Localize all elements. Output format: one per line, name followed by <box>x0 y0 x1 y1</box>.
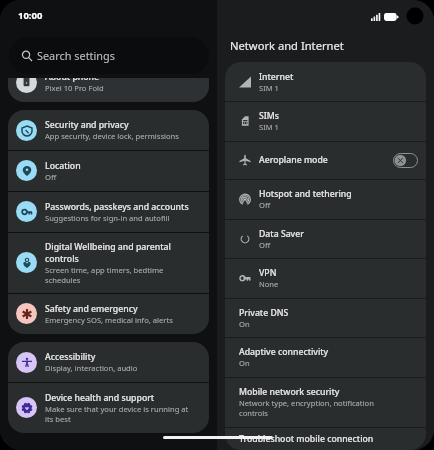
staticText: App security, device lock, permissions <box>45 131 179 141</box>
button[interactable]: Data Saver <box>225 219 426 258</box>
staticText: Emergency SOS, medical info, alerts <box>45 315 173 325</box>
button[interactable]: Security and privacy <box>8 110 209 150</box>
staticText: Security and privacy <box>45 119 129 131</box>
staticText: Location <box>45 160 81 172</box>
staticText: On <box>239 358 250 368</box>
button[interactable]: Mobile network security <box>225 377 426 427</box>
staticText: On <box>239 319 250 329</box>
staticText: Aeroplane mode <box>259 154 328 166</box>
staticText: Passwords, passkeys and accounts <box>45 201 189 213</box>
button[interactable]: Hotspot and tethering <box>225 179 426 219</box>
staticText: Hotspot and tethering <box>259 188 352 200</box>
staticText: Safety and emergency <box>45 303 138 315</box>
button[interactable]: VPN <box>225 258 426 298</box>
staticText: Digital Wellbeing and parental controls <box>45 241 198 265</box>
button[interactable]: SIMs <box>225 101 426 141</box>
button[interactable]: Digital Wellbeing and parental controls <box>8 232 209 293</box>
button[interactable]: Passwords, passkeys and accounts <box>8 191 209 232</box>
staticText: Adaptive connectivity <box>239 346 329 358</box>
button[interactable]: Aeroplane mode <box>225 141 426 179</box>
staticText: Off <box>259 240 271 250</box>
staticText: 10:00 <box>18 9 43 22</box>
staticText: Internet <box>259 71 294 83</box>
staticText: Off <box>45 172 57 182</box>
staticText: Search settings <box>37 48 115 63</box>
button[interactable]: Safety and emergency <box>8 293 209 334</box>
staticText: Suggestions for sign-in and autofill <box>45 213 170 223</box>
staticText: Troubleshoot mobile connection <box>239 433 374 445</box>
staticText: VPN <box>259 267 277 279</box>
staticText: Make sure that your device is running at… <box>45 404 198 424</box>
staticText: Device health and support <box>45 392 155 404</box>
button[interactable]: Device health and support <box>8 382 209 433</box>
button[interactable]: Location <box>8 150 209 191</box>
button[interactable]: Search settings <box>9 37 209 74</box>
staticText: Accessibility <box>45 351 96 363</box>
button[interactable]: Accessibility <box>8 342 209 382</box>
staticText: Network type, encryption, notification c… <box>239 398 394 418</box>
button[interactable]: Internet <box>225 62 426 101</box>
staticText: SIM 1 <box>259 122 279 132</box>
button[interactable]: Adaptive connectivity <box>225 337 426 377</box>
staticText: Display, interaction, audio <box>45 363 138 373</box>
staticText: Network and Internet <box>230 38 344 53</box>
staticText: About phone <box>45 71 99 83</box>
staticText: None <box>259 279 279 289</box>
staticText: Pixel 10 Pro Fold <box>45 83 104 93</box>
button[interactable]: Troubleshoot mobile connection <box>225 427 426 450</box>
staticText: Screen time, app timers, bedtime schedul… <box>45 265 198 285</box>
staticText: Off <box>259 200 271 210</box>
button[interactable]: About phone <box>8 62 209 102</box>
staticText: Private DNS <box>239 307 289 319</box>
button[interactable]: Private DNS <box>225 298 426 337</box>
staticText: Data Saver <box>259 228 304 240</box>
other: Aeroplane mode toggle, off <box>393 153 418 168</box>
staticText: SIM 1 <box>259 83 279 93</box>
staticText: Mobile network security <box>239 386 340 398</box>
staticText: SIMs <box>259 110 280 122</box>
